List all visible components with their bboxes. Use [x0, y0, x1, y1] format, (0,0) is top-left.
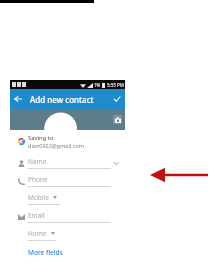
button[interactable]: Save contact: [109, 91, 125, 107]
staticText: Add new contact: [30, 94, 94, 105]
button[interactable]: Saving to: [10, 130, 125, 152]
button[interactable]: Change photo: [113, 115, 122, 124]
staticText: Saving to: [28, 134, 54, 142]
button[interactable]: Home: [10, 226, 125, 244]
staticText: 1%: [94, 82, 101, 88]
button[interactable]: Name: [10, 154, 125, 172]
staticText: Home: [28, 229, 47, 238]
button[interactable]: Back: [10, 91, 26, 107]
staticText: Phone: [28, 175, 48, 184]
staticText: dian0922@gmail.com: [28, 142, 84, 149]
staticText: Mobile: [28, 193, 49, 202]
staticText: More fields: [28, 248, 63, 257]
button[interactable]: Email: [10, 208, 125, 226]
button[interactable]: Phone: [10, 172, 125, 190]
button[interactable]: Mobile: [10, 190, 125, 208]
button[interactable]: More fields: [10, 244, 125, 260]
staticText: Name: [28, 157, 47, 166]
staticText: 5:55 PM: [107, 82, 124, 88]
staticText: Email: [28, 211, 45, 220]
